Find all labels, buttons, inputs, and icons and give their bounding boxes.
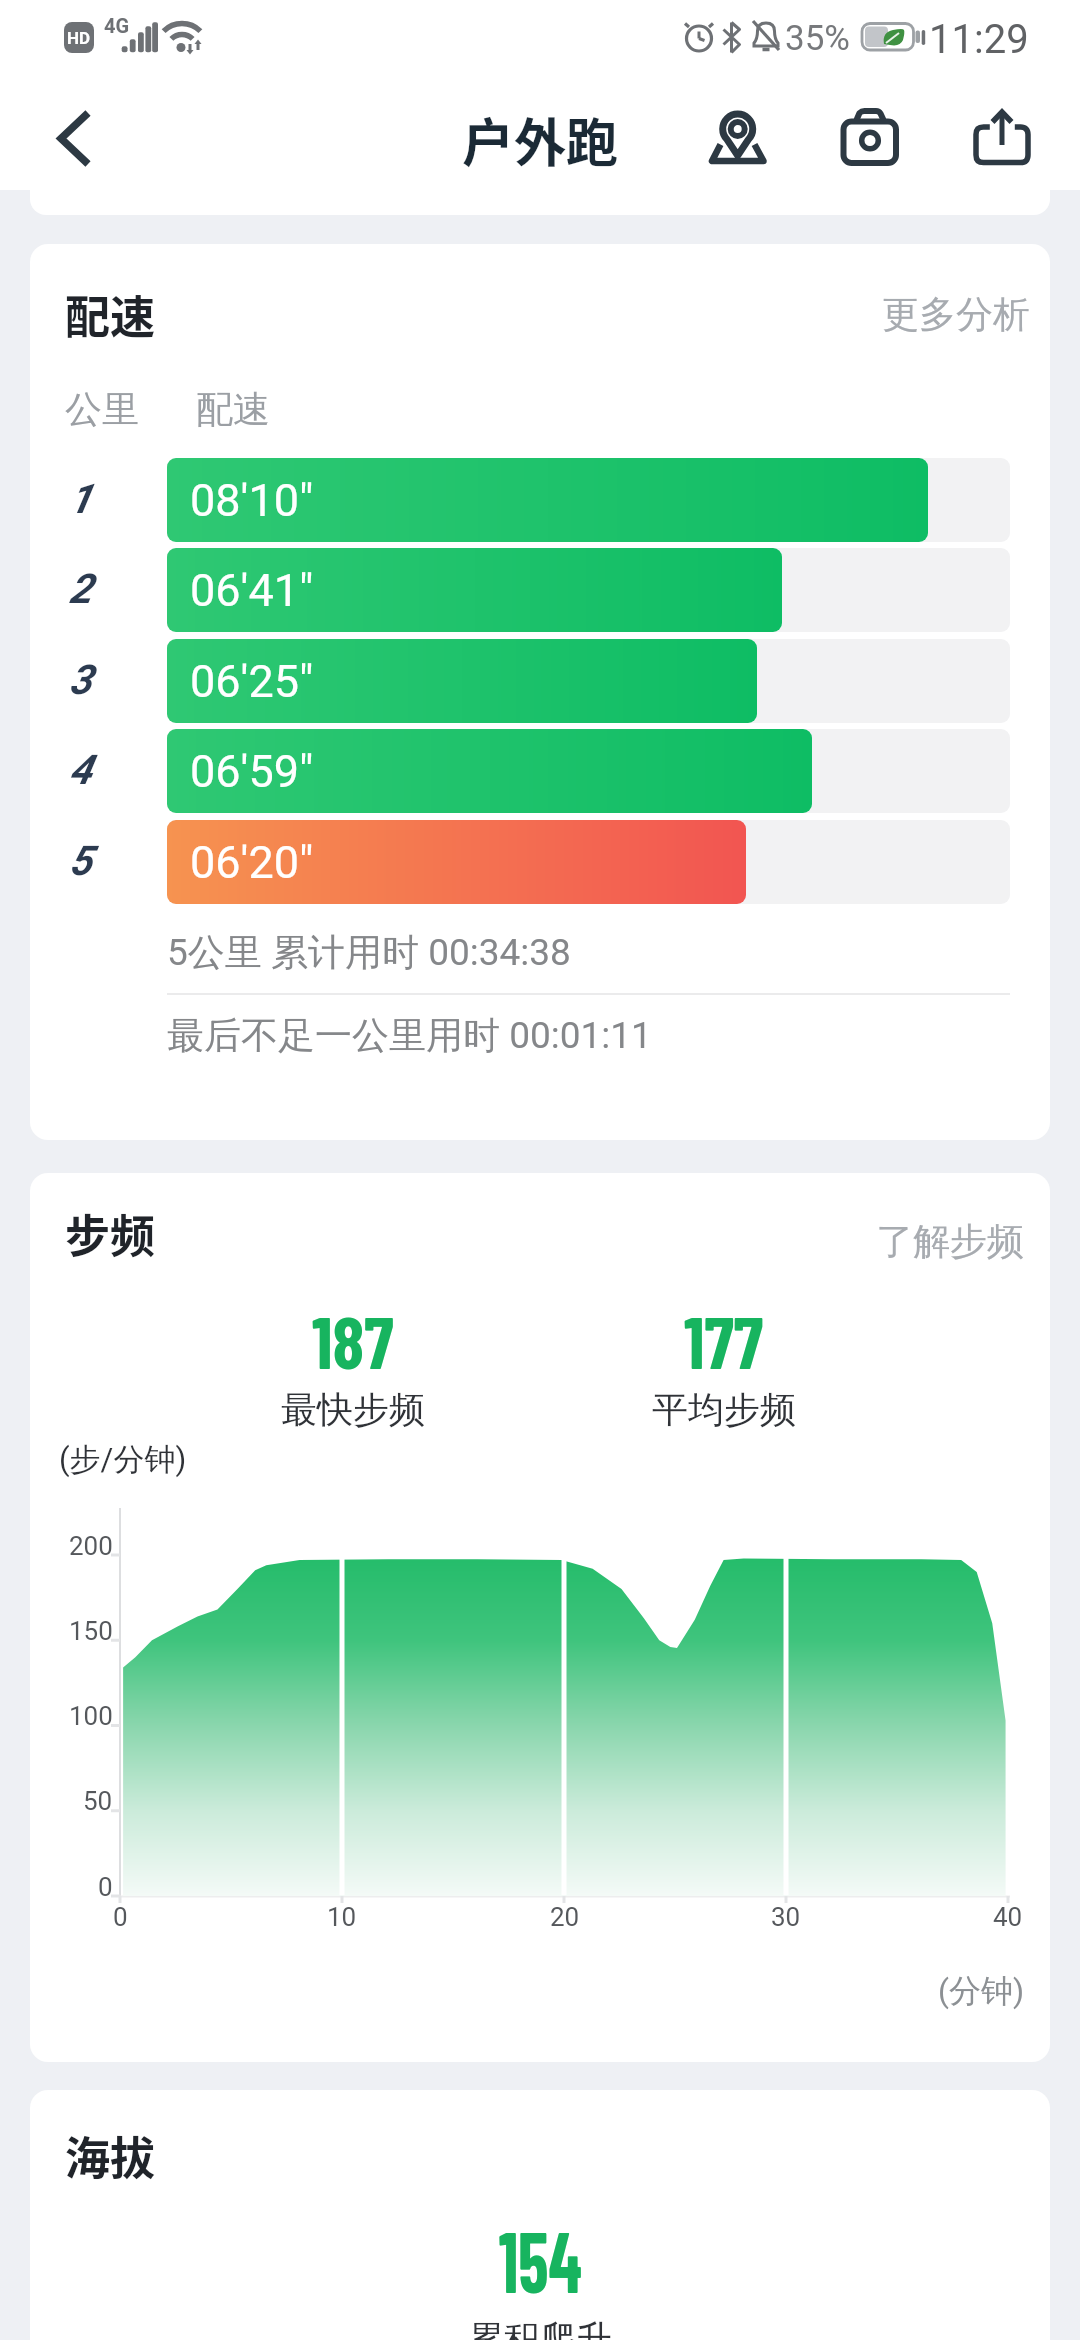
staticText: (分钟) <box>938 1971 1025 2011</box>
staticText: 08'10" <box>190 474 314 527</box>
button[interactable] <box>697 90 777 180</box>
staticText: 100 <box>69 1701 113 1731</box>
staticText: 200 <box>69 1531 113 1561</box>
staticText: 5 <box>69 837 92 885</box>
staticText: 50 <box>83 1786 113 1816</box>
staticText: 平均步频 <box>652 1387 796 1432</box>
staticText: 0 <box>98 1872 113 1902</box>
staticText: 154 <box>499 2208 582 2310</box>
staticText: 06'59" <box>190 745 314 798</box>
staticText: 06'20" <box>190 836 314 889</box>
staticText: 177 <box>684 1297 764 1383</box>
staticText: 06'41" <box>190 564 314 617</box>
staticText: 10 <box>327 1902 357 1932</box>
staticText: 30 <box>771 1902 801 1932</box>
staticText: 公里 <box>65 386 139 433</box>
staticText: 更多分析 <box>882 291 1030 338</box>
staticText: 5公里 累计用时 00:34:38 <box>167 929 571 976</box>
staticText: 187 <box>312 1297 394 1383</box>
staticText: HD <box>67 28 91 48</box>
staticText: 最后不足一公里用时 00:01:11 <box>167 1012 652 1059</box>
button[interactable] <box>828 90 908 180</box>
staticText: 4 <box>69 746 92 794</box>
staticText: 06'25" <box>190 655 314 708</box>
button[interactable]: 更多分析 <box>850 291 1030 338</box>
staticText: 配速 <box>65 282 156 347</box>
staticText: 40 <box>993 1902 1023 1932</box>
staticText: 20 <box>550 1902 580 1932</box>
button[interactable] <box>30 90 110 190</box>
staticText: 1 <box>69 475 92 523</box>
staticText: 了解步频 <box>876 1218 1024 1265</box>
staticText: 海拔 <box>65 2123 156 2188</box>
staticText: 35% <box>785 18 850 59</box>
staticText: 3 <box>69 656 92 704</box>
staticText: 4G <box>104 14 130 37</box>
staticText: 步频 <box>65 1201 156 1266</box>
staticText: 11:29 <box>929 16 1029 63</box>
button[interactable]: 了解步频 <box>844 1218 1024 1265</box>
staticText: 2 <box>69 565 92 613</box>
staticText: 累积爬升 <box>468 2316 612 2340</box>
staticText: 最快步频 <box>281 1387 425 1432</box>
staticText: (步/分钟) <box>59 1440 187 1479</box>
button[interactable] <box>960 90 1040 180</box>
staticText: 配速 <box>196 386 270 433</box>
staticText: 户外跑 <box>462 102 619 177</box>
staticText: 0 <box>113 1902 128 1932</box>
staticText: 150 <box>69 1616 113 1646</box>
